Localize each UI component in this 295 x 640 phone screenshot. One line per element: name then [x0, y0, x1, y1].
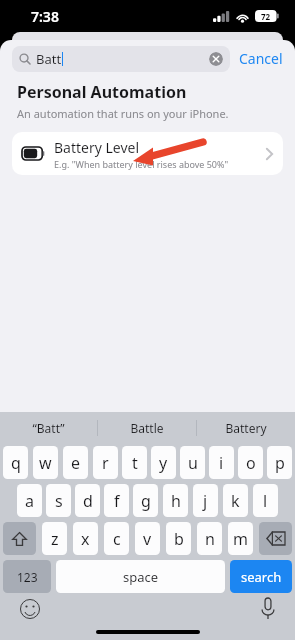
staticText: e [71, 452, 81, 474]
staticText: g [141, 490, 151, 512]
staticText: Batt [36, 50, 62, 68]
button[interactable]: c [104, 522, 129, 555]
button[interactable]: r [93, 446, 118, 479]
staticText: u [188, 452, 198, 474]
button[interactable]: Shift [3, 522, 36, 555]
button[interactable]: search [230, 560, 292, 593]
button[interactable]: Dictate [261, 598, 275, 619]
button[interactable]: Battery Level [12, 132, 283, 175]
staticText: n [205, 528, 215, 550]
button[interactable]: Battery [197, 412, 295, 443]
staticText: Battle [130, 420, 164, 436]
staticText: h [171, 490, 181, 512]
staticText: 7:38 [31, 7, 59, 26]
button[interactable]: n [197, 522, 222, 555]
button[interactable]: e [63, 446, 88, 479]
staticText: r [102, 452, 109, 474]
staticText: p [275, 452, 285, 474]
button[interactable]: b [166, 522, 191, 555]
button[interactable]: Cancel [230, 49, 285, 68]
button[interactable]: g [133, 484, 158, 517]
button[interactable]: u [180, 446, 205, 479]
button[interactable]: z [42, 522, 67, 555]
staticText: 72 [261, 11, 271, 22]
staticText: y [159, 452, 168, 474]
button[interactable]: Batt [12, 46, 230, 72]
button[interactable]: 123 [3, 560, 51, 593]
button[interactable]: l [253, 484, 278, 517]
button[interactable]: t [122, 446, 147, 479]
staticText: b [174, 528, 184, 550]
staticText: E.g. "When battery level rises above 50%… [54, 158, 229, 170]
button[interactable]: Emoji [20, 599, 40, 619]
staticText: Battery [225, 420, 267, 436]
staticText: z [51, 528, 59, 550]
button[interactable]: space [56, 560, 225, 593]
staticText: w [39, 452, 52, 474]
staticText: x [81, 528, 90, 550]
button[interactable]: “Batt” [0, 412, 97, 443]
staticText: d [83, 490, 93, 512]
staticText: c [113, 528, 121, 550]
staticText: Personal Automation [17, 81, 187, 103]
button[interactable]: x [73, 522, 98, 555]
staticText: space [123, 568, 159, 586]
staticText: v [143, 528, 152, 550]
button[interactable]: y [151, 446, 176, 479]
button[interactable]: m [228, 522, 253, 555]
staticText: o [246, 452, 256, 474]
staticText: m [233, 528, 248, 550]
staticText: Battery Level [54, 138, 140, 157]
button[interactable]: k [223, 484, 248, 517]
staticText: 123 [17, 569, 38, 585]
button[interactable]: p [267, 446, 292, 479]
button[interactable]: Clear text [209, 52, 223, 66]
button[interactable]: Battle [98, 412, 196, 443]
staticText: a [25, 490, 34, 512]
button[interactable]: q [3, 446, 28, 479]
staticText: f [114, 490, 120, 512]
staticText: “Batt” [32, 420, 65, 436]
button[interactable]: d [75, 484, 100, 517]
button[interactable]: o [238, 446, 263, 479]
button[interactable]: h [163, 484, 188, 517]
button[interactable]: w [33, 446, 58, 479]
staticText: l [263, 490, 268, 512]
staticText: t [132, 452, 138, 474]
staticText: q [11, 452, 21, 474]
button[interactable]: i [209, 446, 234, 479]
staticText: An automation that runs on your iPhone. [17, 106, 229, 121]
staticText: Cancel [239, 49, 283, 68]
staticText: s [55, 490, 63, 512]
button[interactable]: s [46, 484, 71, 517]
button[interactable]: Backspace [259, 522, 292, 555]
staticText: search [241, 568, 282, 586]
button[interactable]: v [135, 522, 160, 555]
button[interactable]: j [193, 484, 218, 517]
button[interactable]: f [104, 484, 129, 517]
staticText: j [203, 490, 208, 512]
staticText: i [219, 452, 224, 474]
staticText: k [231, 490, 240, 512]
button[interactable]: a [17, 484, 42, 517]
